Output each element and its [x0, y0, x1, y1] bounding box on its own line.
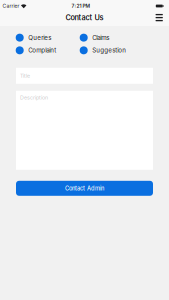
button[interactable]: Queries — [16, 31, 80, 44]
staticText: 7:21 PM — [71, 3, 90, 9]
staticText: Title — [20, 73, 30, 79]
staticText: Contact Us — [65, 13, 103, 22]
staticText: Complaint — [28, 47, 56, 54]
staticText: Claims — [92, 34, 109, 41]
staticText: Queries — [28, 34, 51, 41]
button[interactable]: Claims — [80, 31, 144, 44]
staticText: Description — [20, 94, 48, 101]
staticText: Carrier — [2, 3, 19, 9]
button[interactable]: Suggestion — [80, 44, 144, 57]
button[interactable]: Menu — [152, 12, 166, 26]
button[interactable]: Contact Admin — [16, 181, 153, 196]
staticText: Contact Admin — [65, 185, 104, 192]
button[interactable]: Complaint — [16, 44, 80, 57]
staticText: Suggestion — [92, 47, 126, 54]
